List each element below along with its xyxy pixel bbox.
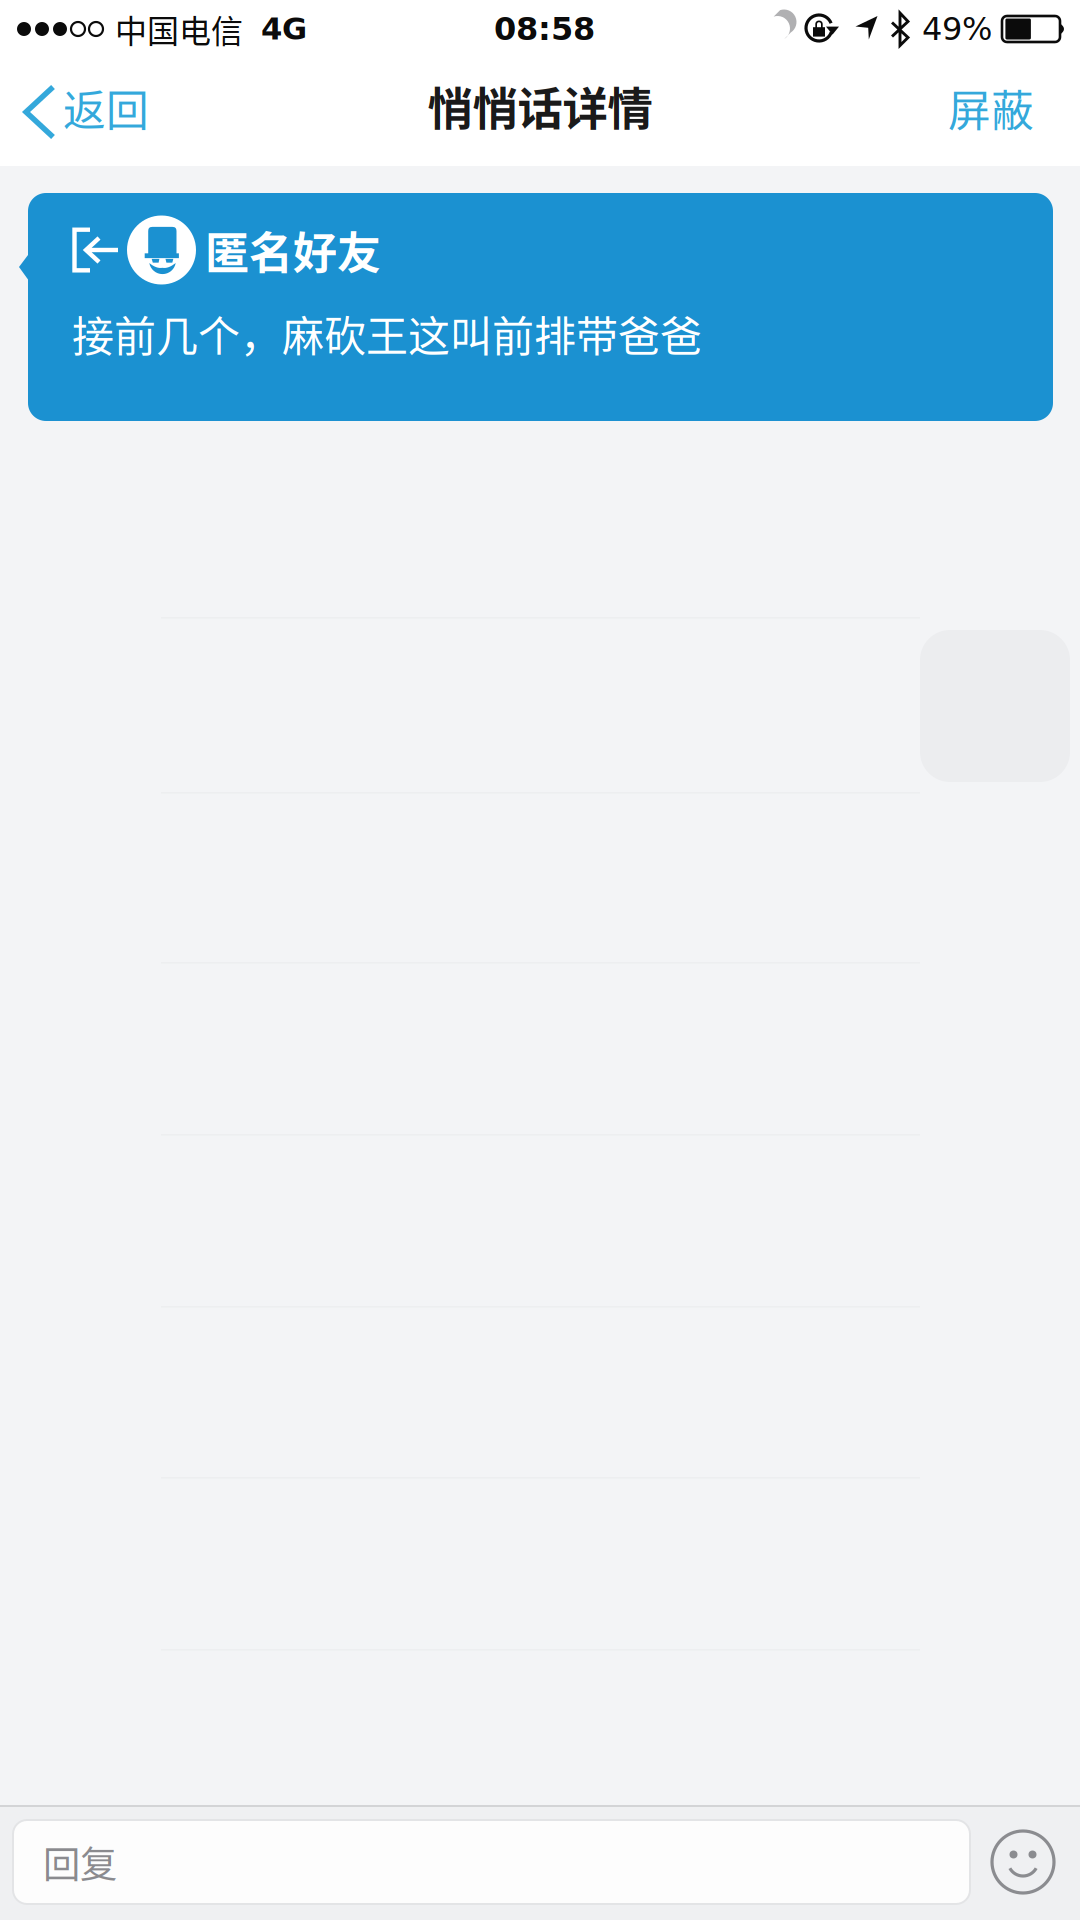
staticText: 回复 [43, 1835, 117, 1889]
staticText: 匿名好友 [205, 218, 381, 282]
button[interactable]: 回复 [13, 1820, 970, 1904]
button[interactable]: 屏蔽 [928, 59, 1080, 165]
button[interactable]: 返回 [0, 59, 163, 165]
staticText: 接前几个，麻砍王这叫前排带爸爸 [72, 303, 702, 364]
staticText: 49% [922, 10, 992, 48]
button[interactable]: Emoji [970, 1820, 1076, 1904]
staticText: 悄悄话详情 [427, 73, 652, 139]
staticText: 中国电信 [115, 6, 243, 52]
staticText: 08:58 [494, 10, 595, 48]
staticText: 返回 [63, 77, 149, 139]
staticText: 4G [261, 11, 307, 47]
staticText: 屏蔽 [948, 77, 1034, 139]
